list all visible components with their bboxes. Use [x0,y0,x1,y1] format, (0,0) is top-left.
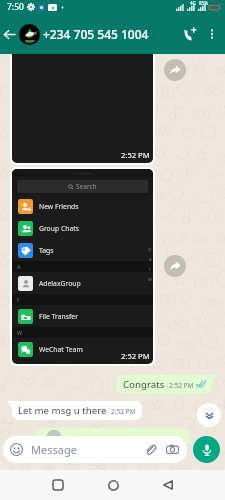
button[interactable]: Back [0,25,19,44]
button[interactable]: Home [98,470,128,500]
staticText: File Transfer [39,312,78,321]
staticText: Congrats [123,378,165,391]
staticText: Tags [39,246,54,255]
staticText: F [149,267,152,272]
button[interactable]: Contacts [12,169,153,364]
button[interactable]: Forward [164,255,186,277]
staticText: 2:52 PM [121,150,150,160]
button[interactable]: 2:52 PM [12,49,153,163]
button[interactable]: Let me msg u there [12,401,142,420]
button[interactable]: Recents [43,470,73,500]
button[interactable]: Back [153,470,183,500]
staticText: 85% [199,0,208,6]
button[interactable]: Message [3,436,187,463]
staticText: Search [76,182,97,191]
staticText: A [149,257,152,262]
staticText: WeChat Team [39,345,83,354]
staticText: Let me msg u there [18,404,107,417]
staticText: Message [31,442,77,457]
staticText: New Friends [39,202,79,211]
staticText: AdelaxGroup [39,279,81,288]
button[interactable]: Voice message [193,436,220,463]
button[interactable]: Congrats [116,375,212,394]
staticText: W [148,277,152,282]
staticText: Group Chats [39,224,79,233]
staticText: Contacts [72,170,93,177]
button[interactable]: Scroll to bottom [197,403,221,427]
button[interactable]: More options [202,24,222,44]
staticText: 2:52 PM [111,407,136,416]
button[interactable]: Forward [164,59,186,81]
staticText: 2:52 PM [169,381,194,390]
staticText: 7:50 [7,1,24,13]
staticText: 4G [190,0,196,6]
staticText: Q [148,247,152,252]
staticText: F [17,296,20,303]
button[interactable]: Add call [178,22,202,46]
staticText: A [17,263,21,270]
staticText: W [17,329,23,336]
staticText: +234 705 545 1004 [43,26,149,42]
staticText: 2:52 PM [121,351,150,361]
